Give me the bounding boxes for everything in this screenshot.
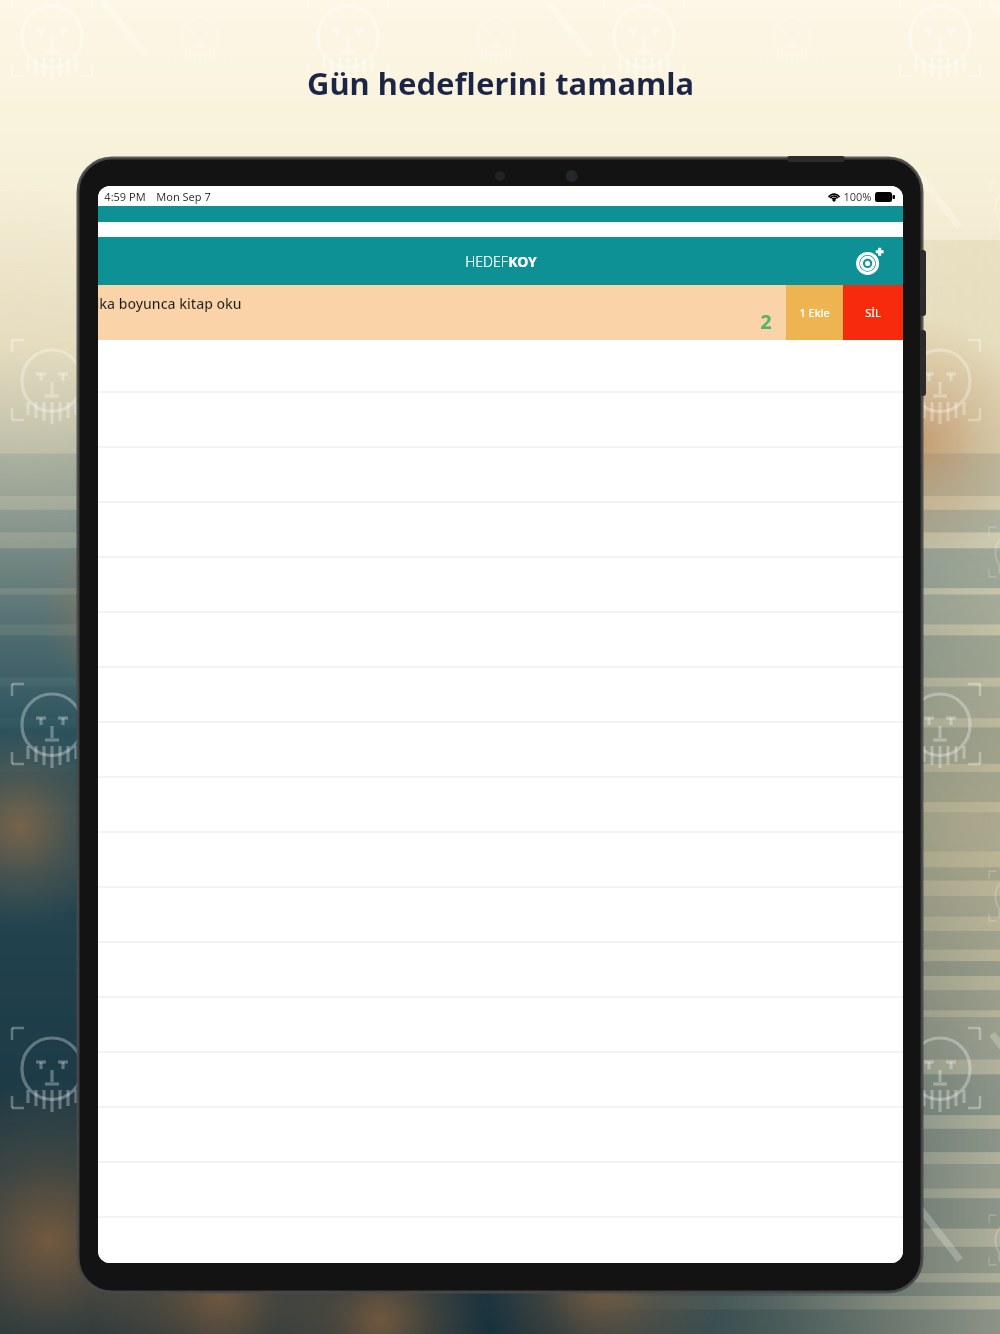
button[interactable]: Yeni hedef ekle [853,244,887,278]
staticText: HEDEF [465,252,508,271]
staticText: 100% [843,189,872,204]
staticText: 2 [760,308,772,335]
staticText: 1 Ekle [799,305,830,320]
button[interactable]: SİL [843,285,903,340]
staticText: KOY [508,252,537,271]
staticText: SİL [865,305,881,320]
staticText: Gün hedeflerini tamamla [307,62,694,104]
staticText: Mon Sep 7 [156,189,211,204]
staticText: Her gün 30 dakika boyunca kitap oku [98,294,242,313]
button[interactable]: 1 Ekle [786,285,843,340]
button[interactable]: Her gün 30 dakika boyunca kitap oku [98,285,786,340]
staticText: 4:59 PM [104,189,146,204]
